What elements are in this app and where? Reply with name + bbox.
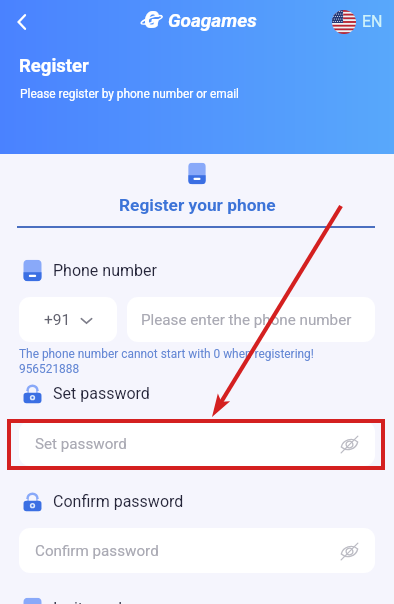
staticText: 956521888	[19, 362, 80, 376]
staticText: Register your phone	[119, 195, 276, 215]
staticText: Confirm password	[53, 492, 184, 511]
staticText: Set password	[35, 435, 127, 453]
button[interactable]: Show password	[337, 539, 361, 563]
button[interactable]: EN	[332, 10, 383, 34]
staticText: Please register by phone number or email	[20, 87, 239, 101]
staticText: +91	[44, 311, 71, 329]
button[interactable]: Back	[0, 0, 44, 44]
staticText: Confirm password	[35, 542, 159, 560]
staticText: Register	[19, 55, 89, 77]
staticText: Phone number	[53, 261, 157, 280]
staticText: G	[144, 7, 160, 30]
staticText: The phone number cannot start with 0 whe…	[19, 347, 314, 361]
staticText: Please enter the phone number	[141, 311, 352, 329]
staticText: Set password	[53, 384, 150, 403]
button[interactable]: +91	[19, 297, 117, 342]
button[interactable]: Show password	[337, 432, 361, 456]
staticText: EN	[362, 12, 383, 31]
staticText: Goagames	[168, 9, 257, 31]
staticText: Invite code	[53, 599, 131, 604]
button[interactable]: Confirm password	[19, 528, 375, 573]
button[interactable]: Please enter the phone number	[127, 297, 375, 342]
button[interactable]: Set password	[19, 421, 375, 466]
